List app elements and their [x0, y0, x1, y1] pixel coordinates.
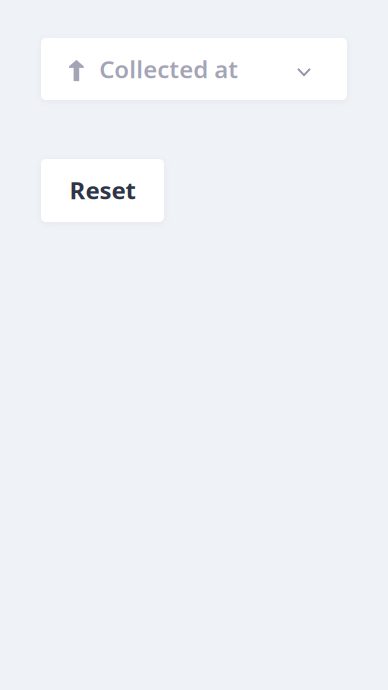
button[interactable]: Collected at [41, 38, 347, 100]
staticText: Collected at [99, 53, 238, 85]
button[interactable]: Reset [41, 159, 164, 222]
staticText: Reset [69, 174, 135, 206]
